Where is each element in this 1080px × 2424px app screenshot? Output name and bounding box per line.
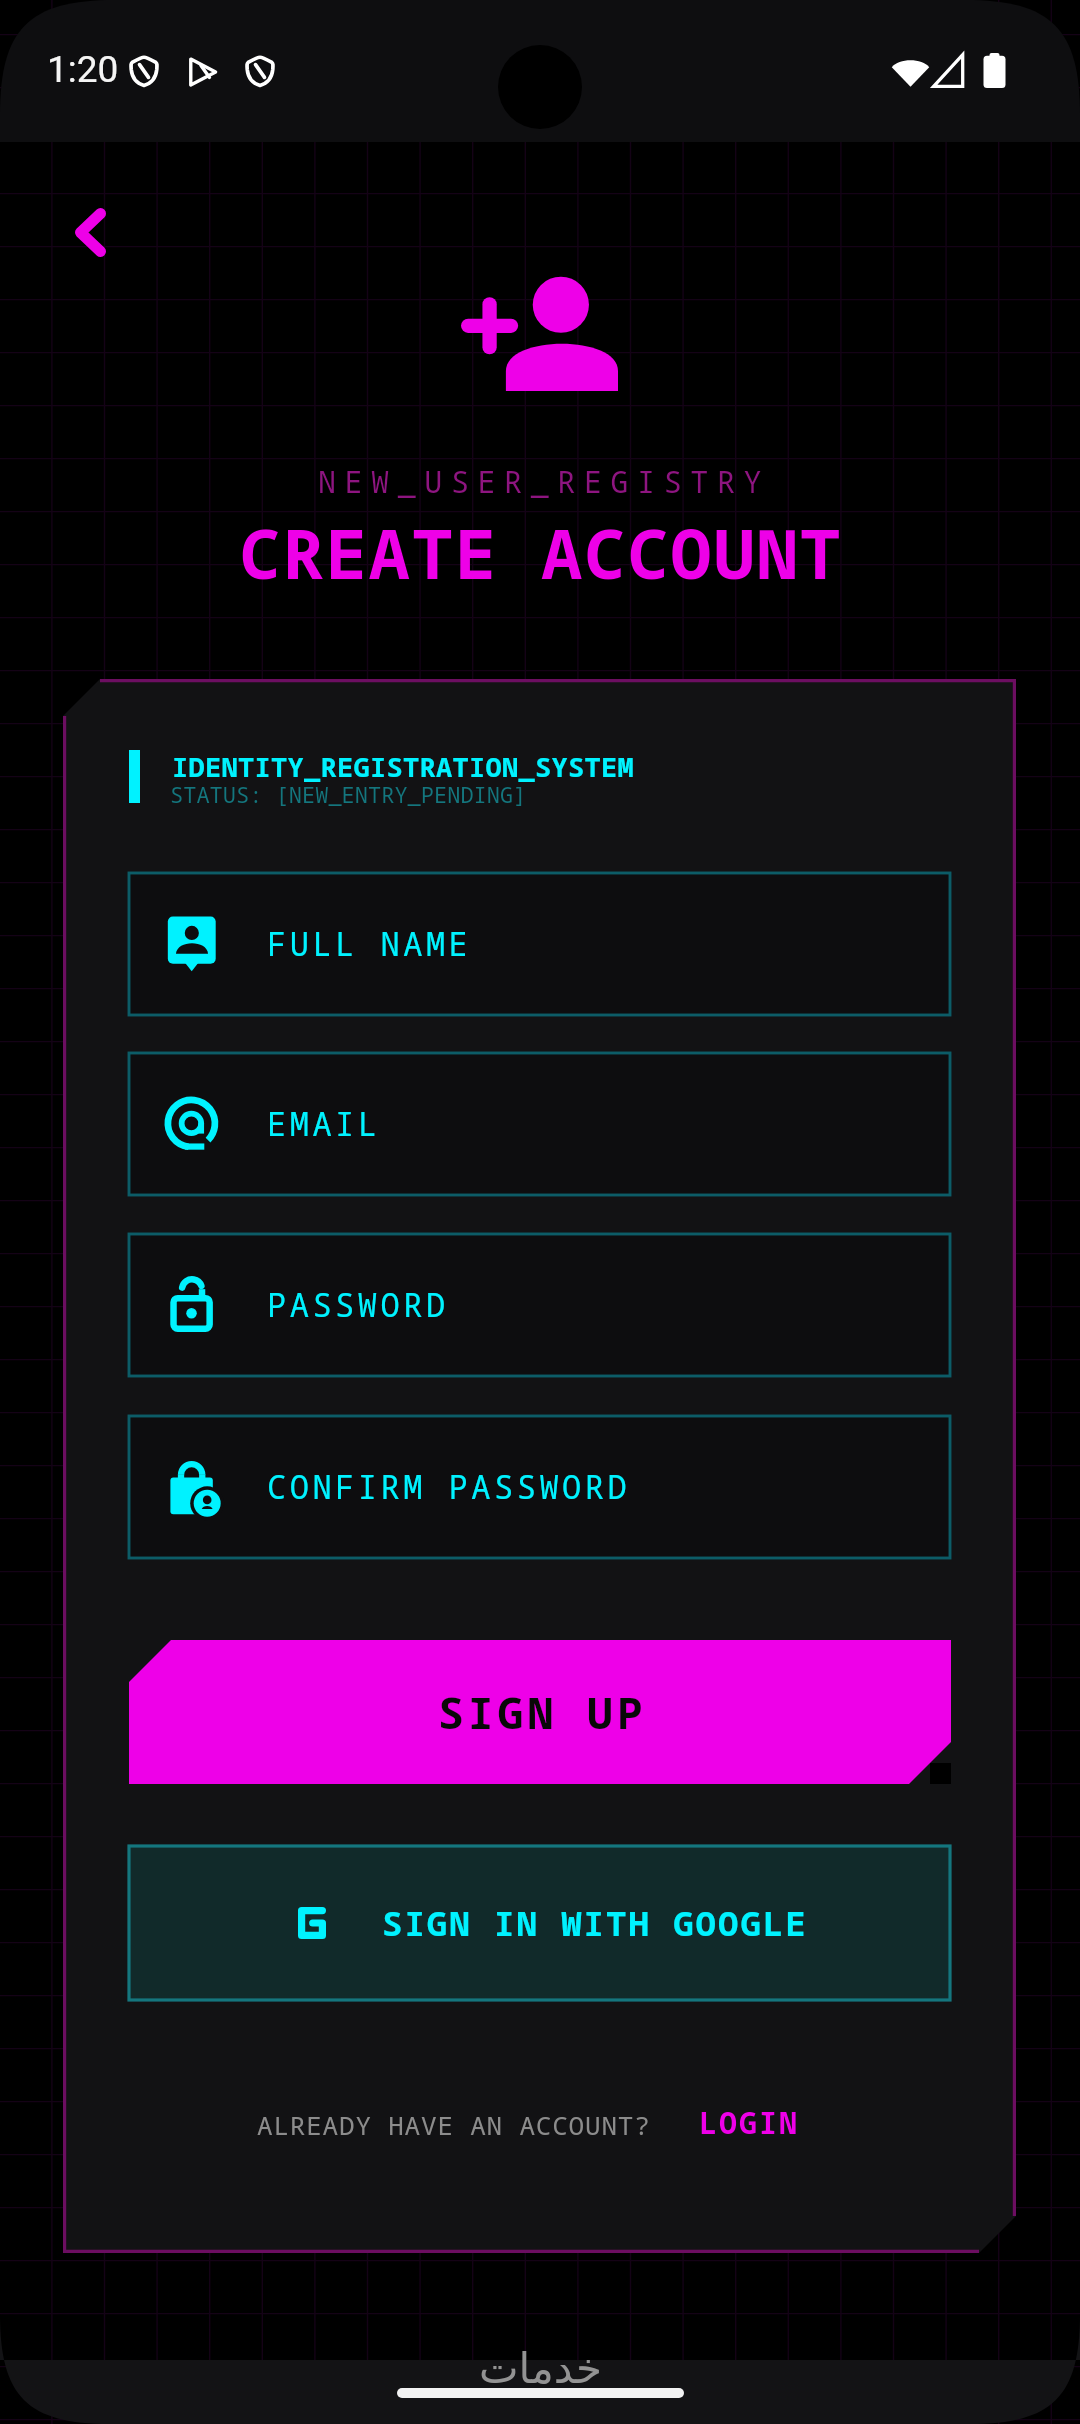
button[interactable]: SIGN UP [129,1640,951,1784]
staticText: IDENTITY_REGISTRATION_SYSTEM [172,748,634,785]
staticText: NEW_USER_REGISTRY [4,461,1080,502]
button[interactable]: Back [40,182,140,282]
button[interactable]: CONFIRM PASSWORD [129,1416,950,1558]
staticText: ALREADY HAVE AN ACCOUNT? [257,2107,651,2142]
button[interactable]: LOGIN [699,2102,799,2143]
button[interactable]: SIGN IN WITH GOOGLE [129,1846,950,2000]
button[interactable]: PASSWORD [129,1234,950,1376]
button[interactable]: FULL NAME [129,873,950,1015]
staticText: SIGN IN WITH GOOGLE [382,1900,808,1946]
staticText: CREATE ACCOUNT [1,505,1080,599]
staticText: CONFIRM PASSWORD [267,1465,631,1509]
staticText: SIGN UP [438,1683,647,1742]
staticText: FULL NAME [267,922,472,966]
staticText: خدمات [479,2344,602,2393]
staticText: EMAIL [267,1102,381,1146]
staticText: STATUS: [NEW_ENTRY_PENDING] [170,779,527,809]
button[interactable]: EMAIL [129,1053,950,1195]
staticText: 1:20 [47,48,119,91]
staticText: LOGIN [699,2102,799,2143]
staticText: PASSWORD [267,1283,449,1327]
